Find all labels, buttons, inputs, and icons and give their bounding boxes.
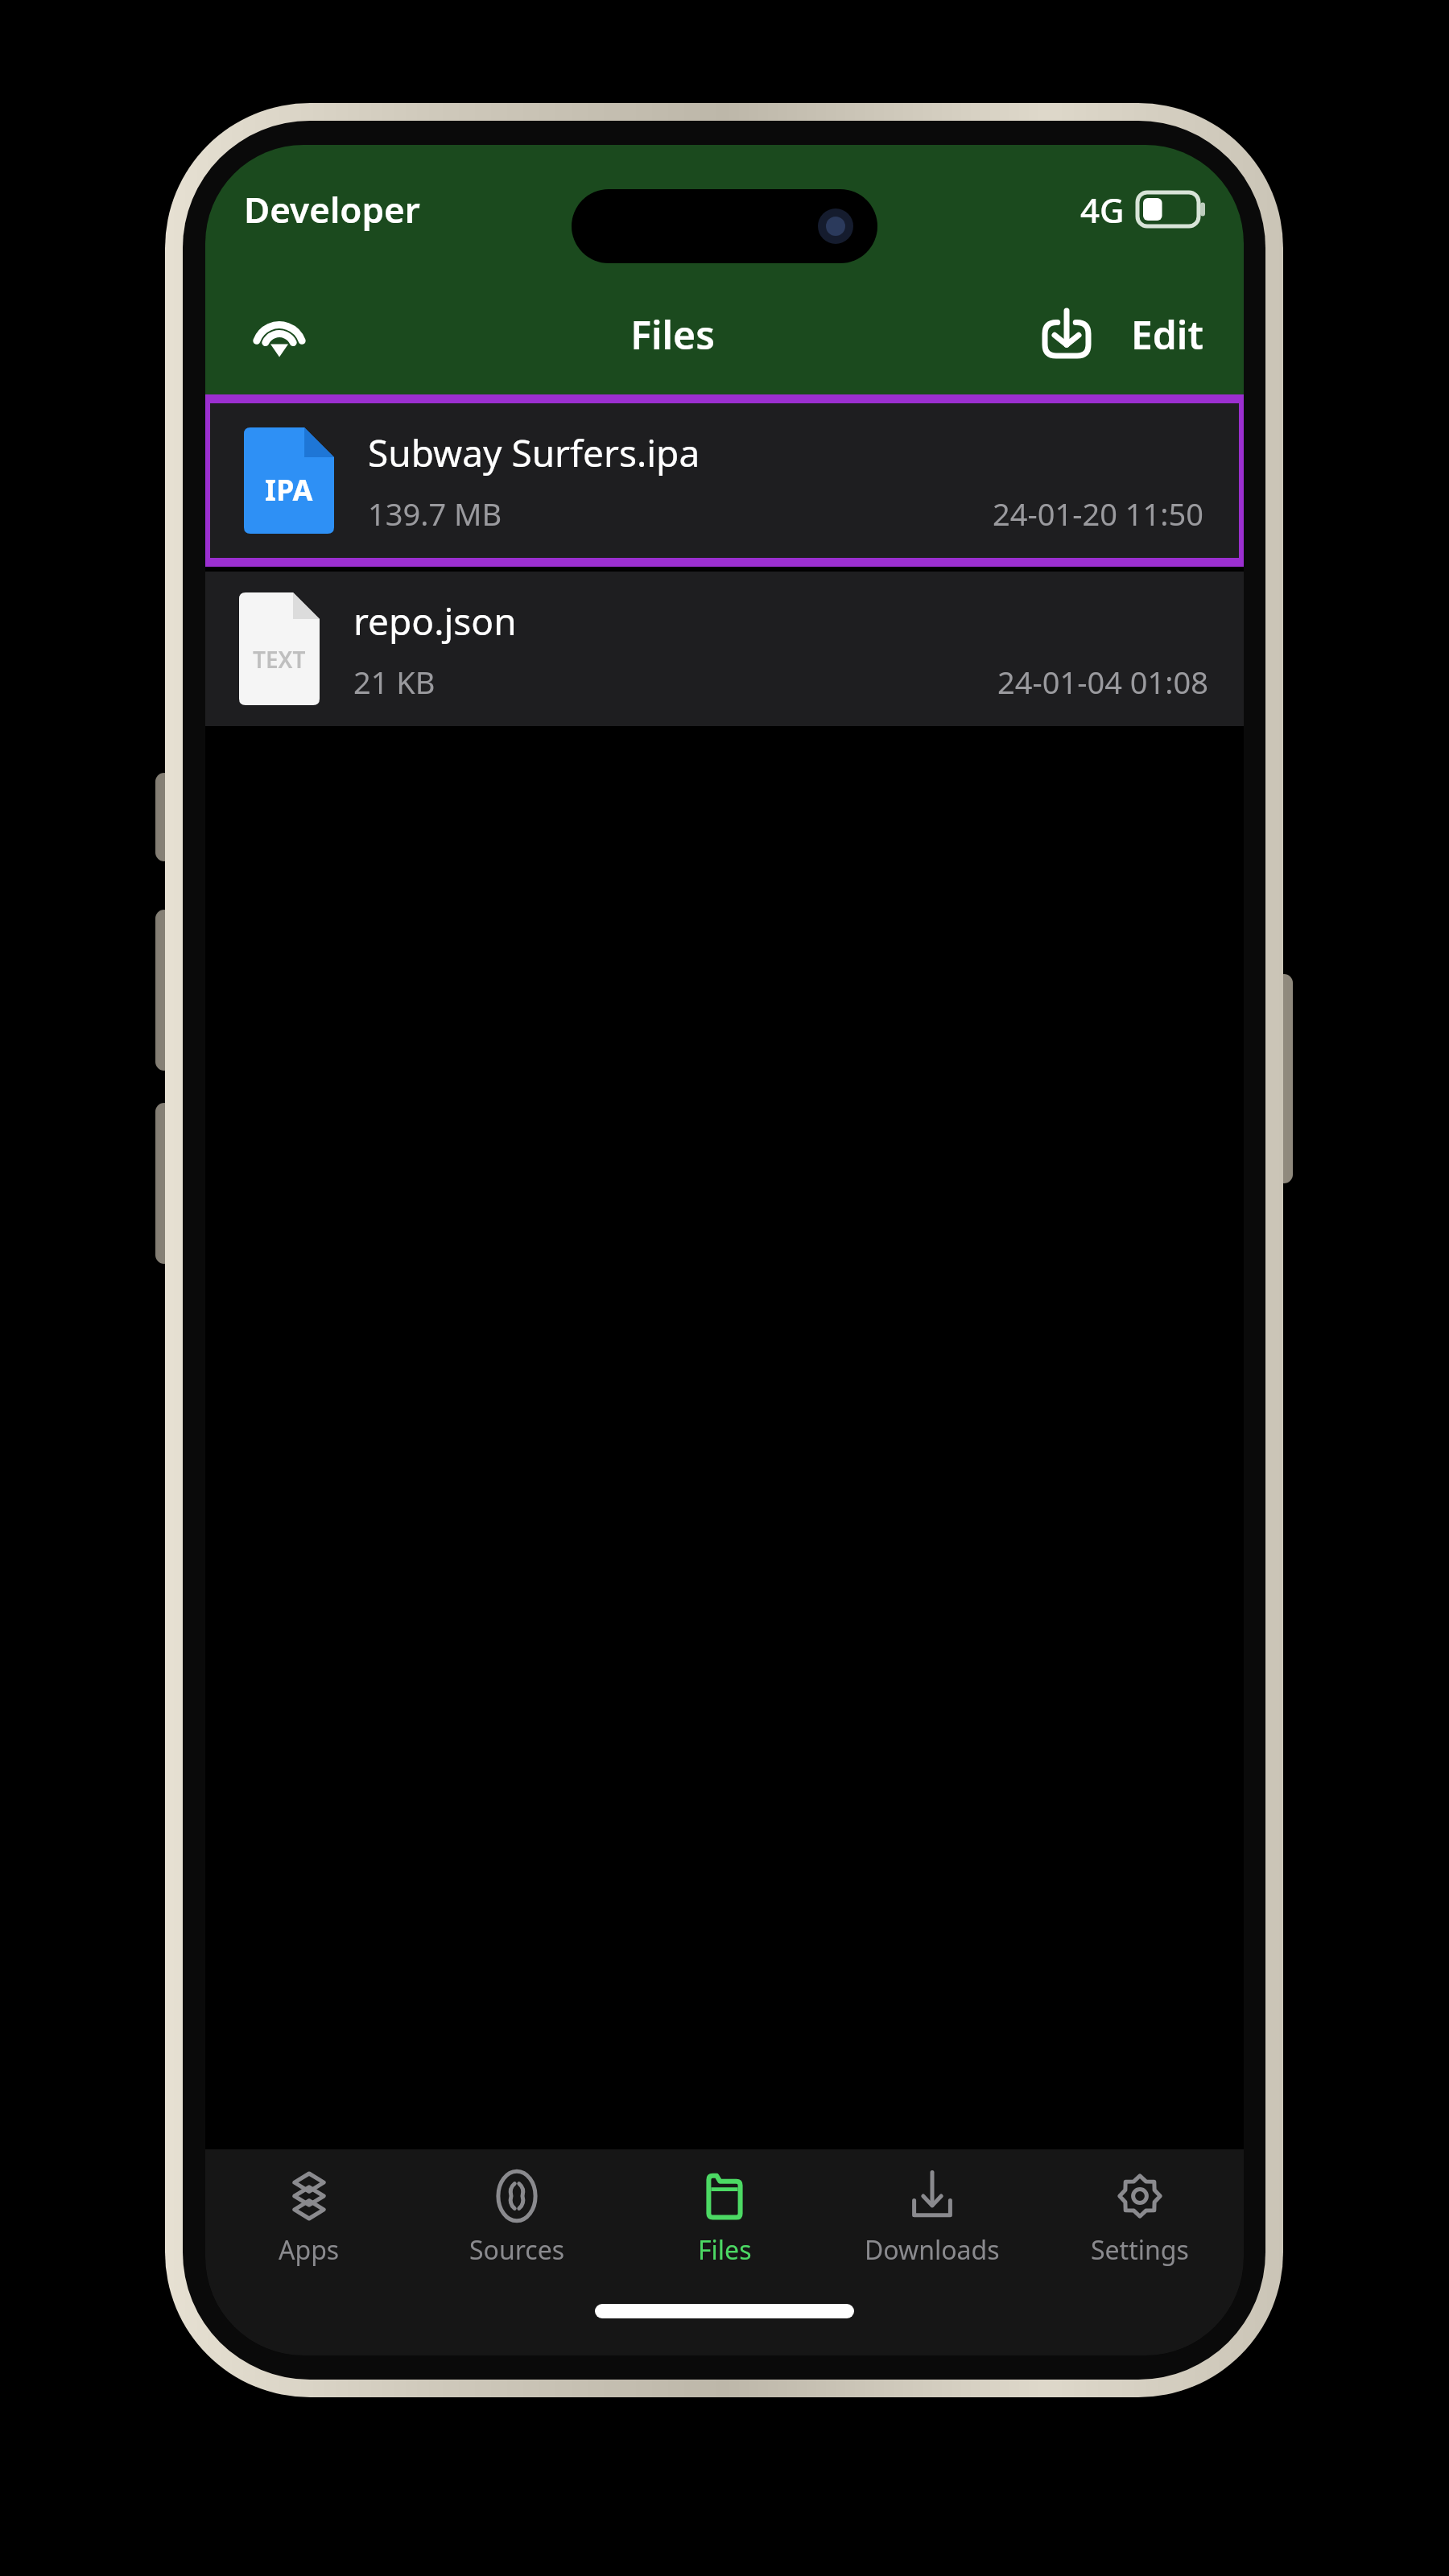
staticText: Settings bbox=[1091, 2232, 1189, 2268]
staticText: 21 KB bbox=[353, 661, 436, 703]
button[interactable]: TEXT bbox=[205, 572, 1244, 726]
staticText: Developer bbox=[244, 185, 420, 233]
staticText: 4G bbox=[1080, 187, 1125, 233]
staticText: Sources bbox=[469, 2232, 565, 2268]
staticText: Edit bbox=[1131, 308, 1203, 361]
staticText: repo.json bbox=[353, 596, 517, 646]
button[interactable]: Edit bbox=[1126, 300, 1208, 369]
staticText: Downloads bbox=[865, 2232, 1000, 2268]
staticText: 24-01-04 01:08 bbox=[997, 661, 1208, 703]
button[interactable]: Import bbox=[1028, 295, 1105, 373]
button[interactable]: Settings bbox=[1036, 2149, 1244, 2286]
staticText: Files bbox=[698, 2232, 752, 2268]
staticText: TEXT bbox=[253, 644, 306, 675]
button[interactable]: Sources bbox=[413, 2149, 621, 2286]
staticText: Apps bbox=[279, 2232, 340, 2268]
staticText: 24-01-20 11:50 bbox=[993, 493, 1203, 535]
button[interactable]: Files bbox=[621, 2149, 828, 2286]
button[interactable]: Downloads bbox=[828, 2149, 1036, 2286]
staticText: IPA bbox=[265, 470, 313, 510]
button[interactable]: IPA bbox=[210, 403, 1239, 558]
staticText: 139.7 MB bbox=[368, 493, 502, 535]
button[interactable]: Apps bbox=[205, 2149, 413, 2286]
staticText: Subway Surfers.ipa bbox=[368, 427, 700, 478]
staticText: Files bbox=[630, 308, 715, 361]
button[interactable]: Wi-Fi bbox=[241, 295, 318, 373]
